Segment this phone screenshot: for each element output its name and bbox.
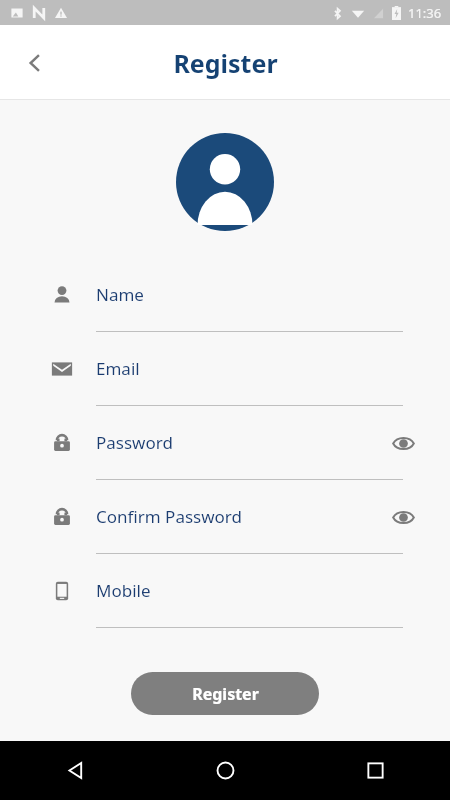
- button[interactable]: Show password: [384, 498, 422, 536]
- button[interactable]: Show password: [384, 424, 422, 462]
- staticText: Mobile: [96, 579, 384, 602]
- button[interactable]: Back: [12, 40, 58, 86]
- button[interactable]: Email: [0, 332, 450, 406]
- staticText: Register: [192, 683, 259, 705]
- button[interactable]: Mobile: [0, 554, 450, 628]
- staticText: 11:36: [408, 4, 442, 22]
- button[interactable]: Home: [150, 741, 300, 800]
- button[interactable]: Register: [131, 672, 319, 715]
- button[interactable]: Confirm Password: [0, 480, 450, 554]
- staticText: Name: [96, 283, 384, 306]
- button[interactable]: Recent apps: [300, 741, 450, 800]
- button[interactable]: Back: [0, 741, 150, 800]
- staticText: Email: [96, 357, 384, 380]
- button[interactable]: Password: [0, 406, 450, 480]
- staticText: Register: [173, 46, 278, 80]
- staticText: Confirm Password: [96, 505, 384, 528]
- button[interactable]: Name: [0, 258, 450, 332]
- staticText: Password: [96, 431, 384, 454]
